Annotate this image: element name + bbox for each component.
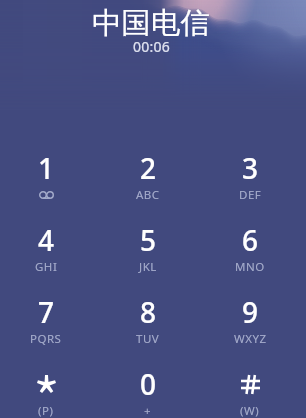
staticText: 9 xyxy=(242,293,259,331)
staticText: JKL xyxy=(139,259,157,275)
staticText: + xyxy=(144,403,152,418)
staticText: 4 xyxy=(38,221,55,259)
staticText: GHI xyxy=(35,259,58,275)
staticText: 0 xyxy=(140,365,157,403)
button[interactable]: Key 7 xyxy=(0,294,97,366)
staticText: 1 xyxy=(38,149,55,187)
staticText: 8 xyxy=(140,293,157,331)
button[interactable]: Key 6 xyxy=(199,222,301,294)
staticText: (W) xyxy=(240,403,260,418)
staticText: (P) xyxy=(38,403,54,418)
button[interactable]: Key 5 xyxy=(97,222,199,294)
button[interactable]: Key 0 xyxy=(97,366,199,418)
button[interactable]: Key 4 xyxy=(0,222,97,294)
button[interactable]: Key 2 xyxy=(97,150,199,222)
staticText: 7 xyxy=(38,293,55,331)
staticText: 00:06 xyxy=(133,37,170,56)
button[interactable]: Key 3 xyxy=(199,150,301,222)
staticText: 中国电信 xyxy=(92,5,210,42)
staticText: 3 xyxy=(242,149,259,187)
staticText: WXYZ xyxy=(234,331,267,347)
button[interactable]: Key * xyxy=(0,366,97,418)
staticText: PQRS xyxy=(30,331,62,347)
staticText: TUV xyxy=(136,331,160,347)
button[interactable]: Key 8 xyxy=(97,294,199,366)
button[interactable]: Key # xyxy=(199,366,301,418)
button[interactable]: Key 1 xyxy=(0,150,97,222)
staticText: ABC xyxy=(136,187,160,203)
staticText: MNO xyxy=(235,259,265,275)
staticText: DEF xyxy=(239,187,262,203)
staticText: 5 xyxy=(140,221,157,259)
staticText: 6 xyxy=(242,221,259,259)
staticText: 2 xyxy=(140,149,157,187)
button[interactable]: Key 9 xyxy=(199,294,301,366)
